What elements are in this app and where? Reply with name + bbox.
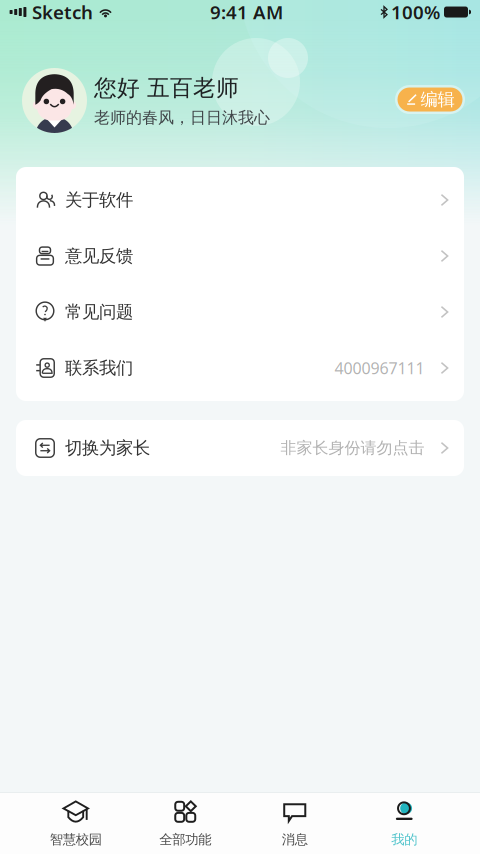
staticText: 编辑	[420, 89, 454, 110]
button[interactable]: 消息	[240, 798, 349, 848]
staticText: 智慧校园	[50, 831, 102, 848]
staticText: 全部功能	[159, 831, 211, 848]
button[interactable]: 智慧校园	[21, 798, 130, 848]
staticText: 切换为家长	[65, 437, 150, 459]
button[interactable]: 关于软件	[16, 172, 464, 228]
staticText: 您好 五百老师	[94, 74, 239, 102]
button[interactable]: 全部功能	[130, 798, 240, 848]
staticText: 消息	[282, 831, 308, 848]
button[interactable]: 意见反馈	[16, 228, 464, 284]
staticText: 100%	[391, 0, 440, 24]
button[interactable]: 我的	[349, 798, 459, 848]
staticText: 非家长身份请勿点击	[281, 438, 425, 458]
staticText: 关于软件	[65, 189, 133, 211]
staticText: 常见问题	[65, 301, 133, 323]
staticText: 老师的春风，日日沐我心	[94, 108, 270, 127]
staticText: 意见反馈	[65, 245, 133, 267]
staticText: 联系我们	[65, 357, 133, 379]
staticText: 我的	[391, 831, 417, 848]
button[interactable]: 切换为家长	[16, 420, 464, 476]
button[interactable]: 编辑	[395, 85, 465, 114]
staticText: 9:41 AM	[210, 0, 283, 24]
staticText: Sketch	[32, 0, 93, 24]
button[interactable]: 联系我们	[16, 340, 464, 396]
button[interactable]: 常见问题	[16, 284, 464, 340]
staticText: 4000967111	[335, 357, 425, 379]
